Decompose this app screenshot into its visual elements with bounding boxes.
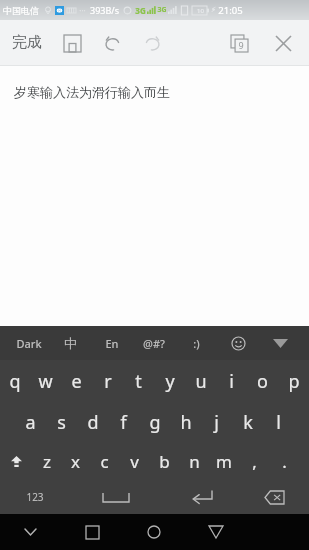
- staticText: b: [159, 450, 170, 473]
- button[interactable]: Windows, 9: [217, 21, 261, 65]
- staticText: 393B/s: [90, 4, 119, 16]
- button[interactable]: h: [170, 402, 201, 442]
- staticText: j: [214, 410, 219, 435]
- staticText: :): [193, 336, 200, 351]
- button[interactable]: Enter: [163, 480, 240, 514]
- button[interactable]: o: [247, 360, 278, 402]
- button[interactable]: Close: [261, 21, 305, 65]
- staticText: En: [105, 336, 119, 351]
- button[interactable]: Emoji: [217, 326, 259, 360]
- staticText: m: [216, 450, 232, 473]
- button[interactable]: x: [61, 442, 90, 480]
- button[interactable]: Redo: [132, 23, 172, 63]
- button[interactable]: g: [139, 402, 170, 442]
- staticText: g: [149, 410, 161, 435]
- button[interactable]: 中: [49, 326, 91, 360]
- button[interactable]: b: [149, 442, 179, 480]
- button[interactable]: ,: [239, 442, 269, 480]
- button[interactable]: Shift: [0, 442, 32, 480]
- staticText: w: [38, 369, 53, 394]
- staticText: l: [276, 410, 281, 435]
- staticText: q: [9, 369, 21, 394]
- staticText: d: [87, 410, 99, 435]
- button[interactable]: @#?: [133, 326, 175, 360]
- button[interactable]: Space: [69, 480, 163, 514]
- button[interactable]: v: [119, 442, 149, 480]
- staticText: p: [288, 369, 300, 394]
- staticText: v: [130, 450, 139, 473]
- staticText: 123: [26, 490, 44, 504]
- staticText: h: [180, 410, 192, 435]
- staticText: @#?: [143, 336, 165, 351]
- button[interactable]: e: [61, 360, 92, 402]
- button[interactable]: t: [123, 360, 154, 402]
- staticText: x: [71, 450, 80, 473]
- button[interactable]: q: [0, 360, 30, 402]
- button[interactable]: 完成: [0, 20, 52, 65]
- button[interactable]: w: [30, 360, 61, 402]
- staticText: c: [100, 450, 109, 473]
- button[interactable]: y: [154, 360, 185, 402]
- staticText: y: [165, 369, 175, 394]
- staticText: u: [195, 369, 207, 394]
- staticText: ⚡: [211, 6, 216, 14]
- staticText: 10: [197, 7, 204, 15]
- button[interactable]: d: [77, 402, 108, 442]
- button[interactable]: n: [179, 442, 209, 480]
- button[interactable]: l: [263, 402, 294, 442]
- staticText: Dark: [16, 336, 42, 351]
- button[interactable]: 123: [0, 480, 69, 514]
- button[interactable]: Dark: [8, 326, 49, 360]
- button[interactable]: Hide keyboard: [0, 514, 61, 550]
- button[interactable]: a: [15, 402, 46, 442]
- staticText: 完成: [12, 33, 42, 52]
- button[interactable]: .: [269, 442, 299, 480]
- staticText: ···: [79, 5, 86, 16]
- button[interactable]: i: [216, 360, 247, 402]
- button[interactable]: Undo: [92, 23, 132, 63]
- staticText: i: [229, 369, 234, 394]
- staticText: 中: [64, 335, 77, 351]
- staticText: a: [25, 410, 36, 435]
- button[interactable]: Hide keyboard: [259, 326, 301, 360]
- button[interactable]: Home: [123, 514, 185, 550]
- staticText: n: [189, 450, 200, 473]
- button[interactable]: Back: [185, 514, 247, 550]
- button[interactable]: z: [32, 442, 61, 480]
- button[interactable]: p: [278, 360, 309, 402]
- staticText: 岁寒输入法为滑行输入而生: [14, 84, 170, 100]
- staticText: z: [43, 450, 51, 473]
- staticText: e: [71, 369, 82, 394]
- staticText: t: [135, 369, 142, 394]
- staticText: s: [57, 410, 66, 435]
- button[interactable]: :): [175, 326, 217, 360]
- staticText: 3G: [135, 5, 146, 16]
- button[interactable]: r: [92, 360, 123, 402]
- staticText: 21:05: [218, 4, 243, 17]
- button[interactable]: m: [209, 442, 239, 480]
- button[interactable]: Backspace: [240, 480, 309, 514]
- button[interactable]: En: [91, 326, 133, 360]
- staticText: o: [257, 369, 268, 394]
- staticText: .: [282, 450, 287, 473]
- button[interactable]: s: [46, 402, 77, 442]
- button[interactable]: f: [108, 402, 139, 442]
- staticText: f: [120, 410, 127, 435]
- button[interactable]: j: [201, 402, 232, 442]
- button[interactable]: u: [185, 360, 216, 402]
- button[interactable]: Save: [52, 23, 92, 63]
- staticText: ,: [252, 450, 257, 473]
- staticText: 中国电信: [3, 5, 39, 16]
- staticText: r: [104, 369, 112, 394]
- button[interactable]: k: [232, 402, 263, 442]
- button[interactable]: Recents: [61, 514, 123, 550]
- staticText: 9: [238, 39, 244, 51]
- staticText: 3G: [157, 5, 167, 15]
- button[interactable]: c: [90, 442, 119, 480]
- staticText: k: [243, 410, 253, 435]
